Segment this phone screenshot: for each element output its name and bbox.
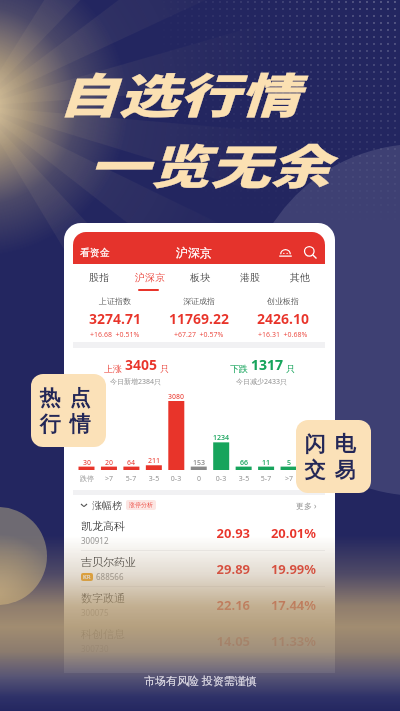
staticText: 14.05 xyxy=(198,632,250,650)
button[interactable]: 热点 行情 xyxy=(31,374,106,447)
staticText: 1317 xyxy=(251,355,284,374)
staticText: 11 xyxy=(253,458,279,468)
button[interactable]: 科创信息 xyxy=(73,623,325,659)
staticText: 闪电 交易 xyxy=(300,431,360,483)
staticText: 创业板指 xyxy=(267,296,299,306)
staticText: 港股 xyxy=(240,271,260,284)
staticText: 3274.71 xyxy=(89,309,141,328)
staticText: 今日新增2384只 xyxy=(110,377,162,387)
staticText: 11.33% xyxy=(250,632,316,650)
button[interactable]: 沪深京 xyxy=(124,264,175,290)
staticText: 深证成指 xyxy=(183,296,215,306)
staticText: 66 xyxy=(231,458,257,468)
staticText: 5 xyxy=(276,458,302,468)
staticText: 沪深京 xyxy=(176,245,212,260)
staticText: 市场有风险 投资需谨慎 xyxy=(144,673,257,688)
staticText: 30 xyxy=(74,458,100,468)
staticText: 上涨 xyxy=(104,363,122,374)
staticText: 5-7 xyxy=(253,474,279,484)
staticText: 5-7 xyxy=(118,474,144,484)
staticText: 下跌 xyxy=(230,363,248,374)
staticText: 20.01% xyxy=(250,524,316,542)
staticText: 自选行情 xyxy=(58,58,300,126)
staticText: 板块 xyxy=(190,271,210,284)
button[interactable]: 股指 xyxy=(73,264,124,290)
staticText: >7 xyxy=(96,474,122,484)
staticText: 11769.22 xyxy=(169,309,229,328)
button[interactable]: 搜索 xyxy=(303,245,318,260)
staticText: 3405 xyxy=(125,355,158,374)
button[interactable]: 港股 xyxy=(225,264,275,290)
staticText: 2426.10 xyxy=(257,309,309,328)
staticText: 19.99% xyxy=(250,560,316,578)
staticText: 今日减少2433只 xyxy=(236,377,288,387)
staticText: 涨停分析 xyxy=(129,501,153,509)
staticText: +16.68 +0.51% xyxy=(90,330,140,340)
staticText: 64 xyxy=(118,458,144,468)
staticText: 1234 xyxy=(208,433,234,443)
staticText: +67.27 +0.57% xyxy=(174,330,224,340)
staticText: 更多 › xyxy=(296,500,317,511)
staticText: 20 xyxy=(96,458,122,468)
staticText: 其他 xyxy=(290,271,310,284)
button[interactable]: 闪电 交易 xyxy=(296,420,371,493)
staticText: 17.44% xyxy=(250,596,316,614)
staticText: 29.89 xyxy=(198,560,250,578)
button[interactable]: AI助手 xyxy=(278,245,293,260)
staticText: 20.93 xyxy=(198,524,250,542)
staticText: 凯龙高科 xyxy=(81,519,125,533)
staticText: 22.16 xyxy=(198,596,250,614)
button[interactable]: 创业板指 xyxy=(241,296,325,340)
button[interactable]: 板块 xyxy=(175,264,225,290)
staticText: 一览无余 xyxy=(89,129,331,197)
button[interactable]: 深证成指 xyxy=(157,296,241,340)
staticText: 0-3 xyxy=(208,474,234,484)
staticText: 3-5 xyxy=(231,474,257,484)
staticText: 153 xyxy=(186,458,212,468)
button[interactable]: 涨幅榜 xyxy=(73,495,325,515)
staticText: 3-5 xyxy=(141,474,167,484)
staticText: 0-3 xyxy=(163,474,189,484)
staticText: 300730 xyxy=(81,643,109,654)
button[interactable]: 凯龙高科 xyxy=(73,515,325,551)
staticText: 上证指数 xyxy=(99,296,131,306)
staticText: 300075 xyxy=(81,607,109,618)
staticText: 211 xyxy=(141,456,167,466)
staticText: 涨幅榜 xyxy=(92,499,122,512)
staticText: +16.31 +0.68% xyxy=(258,330,308,340)
button[interactable]: 其他 xyxy=(275,264,325,290)
button[interactable]: 上证指数 xyxy=(73,296,157,340)
staticText: 3080 xyxy=(163,392,189,402)
staticText: 数字政通 xyxy=(81,591,125,605)
staticText: 沪深京 xyxy=(135,271,165,284)
staticText: >7 xyxy=(276,474,302,484)
button[interactable]: 吉贝尔药业 xyxy=(73,551,325,587)
staticText: 股指 xyxy=(89,271,109,284)
staticText: 只 xyxy=(286,363,295,374)
button[interactable]: 数字政通 xyxy=(73,587,325,623)
staticText: 跌停 xyxy=(74,474,100,483)
staticText: 300912 xyxy=(81,535,109,546)
staticText: KR xyxy=(83,573,91,581)
staticText: 热点 行情 xyxy=(35,385,95,437)
staticText: 科创信息 xyxy=(81,627,125,641)
button[interactable]: 看资金 xyxy=(80,246,110,259)
staticText: 0 xyxy=(186,474,212,484)
staticText: 只 xyxy=(160,363,169,374)
staticText: 688566 xyxy=(96,571,124,582)
staticText: 吉贝尔药业 xyxy=(81,555,136,569)
